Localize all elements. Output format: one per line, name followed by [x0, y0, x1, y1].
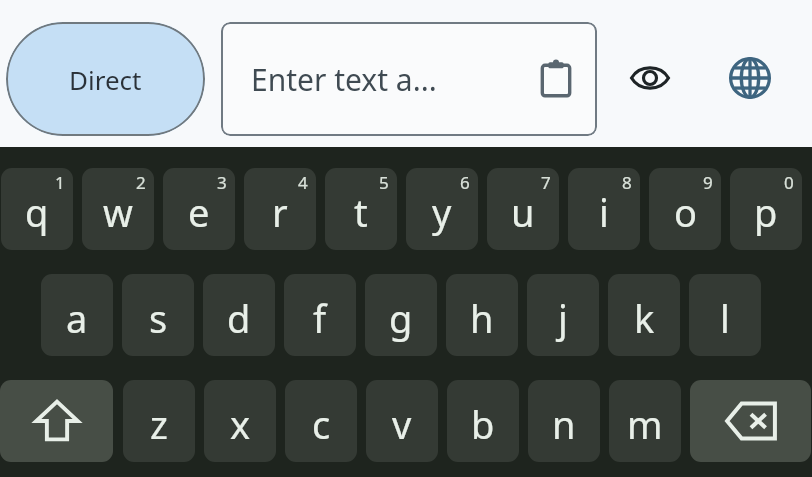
button[interactable]: w — [82, 168, 154, 250]
staticText: r — [272, 186, 288, 238]
staticText: g — [389, 292, 413, 344]
button[interactable]: Direct — [6, 22, 205, 136]
staticText: n — [552, 398, 576, 450]
staticText: e — [188, 186, 210, 238]
staticText: Enter text a... — [251, 59, 537, 100]
button[interactable]: p — [730, 168, 802, 250]
staticText: y — [432, 186, 452, 238]
button[interactable]: i — [568, 168, 640, 250]
staticText: k — [634, 292, 655, 344]
staticText: 5 — [379, 171, 389, 194]
button[interactable]: s — [122, 274, 194, 356]
staticText: a — [66, 292, 88, 344]
staticText: 7 — [541, 171, 551, 194]
button[interactable]: z — [123, 380, 195, 462]
staticText: m — [627, 398, 663, 450]
staticText: 8 — [622, 171, 632, 194]
button[interactable]: d — [203, 274, 275, 356]
staticText: i — [599, 186, 609, 238]
staticText: f — [313, 292, 327, 344]
button[interactable]: q — [1, 168, 73, 250]
button[interactable]: v — [366, 380, 438, 462]
button[interactable]: m — [609, 380, 681, 462]
button[interactable]: c — [285, 380, 357, 462]
staticText: Direct — [69, 62, 142, 97]
button[interactable]: Change language — [714, 42, 786, 114]
button[interactable]: u — [487, 168, 559, 250]
button[interactable]: o — [649, 168, 721, 250]
button[interactable]: Shift — [0, 380, 113, 462]
button[interactable]: b — [447, 380, 519, 462]
staticText: 0 — [784, 171, 794, 194]
staticText: v — [392, 398, 412, 450]
staticText: x — [230, 398, 251, 450]
button[interactable]: l — [689, 274, 761, 356]
staticText: z — [150, 398, 168, 450]
staticText: 9 — [703, 171, 713, 194]
button[interactable]: f — [284, 274, 356, 356]
button[interactable]: y — [406, 168, 478, 250]
button[interactable]: e — [163, 168, 235, 250]
button[interactable]: Enter text a... — [221, 22, 597, 136]
button[interactable]: Backspace — [690, 380, 811, 462]
staticText: h — [470, 292, 494, 344]
button[interactable]: n — [528, 380, 600, 462]
staticText: q — [25, 186, 49, 238]
staticText: o — [674, 186, 697, 238]
staticText: p — [754, 186, 778, 238]
staticText: 1 — [55, 171, 65, 194]
button[interactable]: x — [204, 380, 276, 462]
button[interactable]: k — [608, 274, 680, 356]
staticText: w — [103, 186, 133, 238]
staticText: 3 — [217, 171, 227, 194]
staticText: u — [511, 186, 535, 238]
button[interactable]: a — [41, 274, 113, 356]
staticText: b — [471, 398, 495, 450]
staticText: 4 — [298, 171, 308, 194]
button[interactable]: g — [365, 274, 437, 356]
staticText: d — [227, 292, 251, 344]
button[interactable]: t — [325, 168, 397, 250]
staticText: l — [720, 292, 730, 344]
button[interactable]: r — [244, 168, 316, 250]
button[interactable]: j — [527, 274, 599, 356]
staticText: 2 — [136, 171, 146, 194]
button[interactable]: Show password — [614, 42, 686, 114]
button[interactable]: h — [446, 274, 518, 356]
staticText: c — [312, 398, 331, 450]
staticText: 6 — [460, 171, 470, 194]
staticText: s — [149, 292, 168, 344]
staticText: j — [558, 292, 568, 344]
staticText: t — [354, 186, 368, 238]
